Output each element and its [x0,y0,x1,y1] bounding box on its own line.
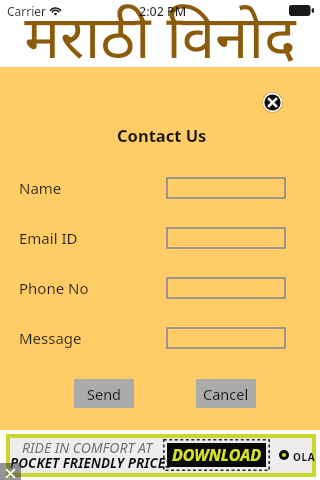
staticText: मराठी विनोद [24,0,296,76]
staticText: Message [19,328,82,348]
staticText: Phone No [19,278,89,298]
staticText: Name [19,178,62,198]
staticText: Email ID [19,228,78,248]
staticText: OLA [293,450,316,464]
staticText: Send [87,384,122,404]
button[interactable] [167,228,285,248]
staticText: Cancel [203,384,249,404]
button[interactable] [167,328,285,348]
staticText: Contact Us [117,124,207,146]
staticText: 2:02 PM [139,3,187,20]
staticText: Carrier [7,3,47,19]
button[interactable]: Close [262,92,283,113]
button[interactable]: Cancel [196,379,256,408]
staticText: POCKET FRIENDLY PRICES [10,454,173,472]
button[interactable]: Close ad [0,463,21,480]
button[interactable]: Send [74,379,134,408]
staticText: DOWNLOAD [172,444,262,466]
button[interactable] [167,178,285,198]
button[interactable]: RIDE IN COMFORT AT [6,434,316,477]
staticText: RIDE IN COMFORT AT [22,438,153,457]
button[interactable] [167,278,285,298]
